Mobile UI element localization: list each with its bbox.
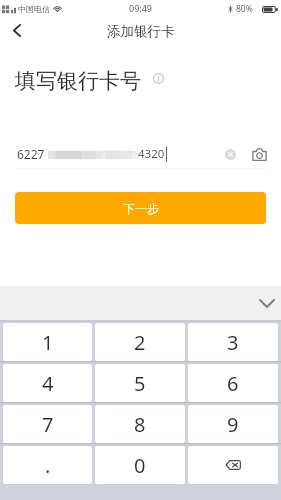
staticText: 6	[227, 370, 239, 397]
button[interactable]: 4	[3, 364, 92, 402]
button[interactable]: 下一步	[15, 192, 266, 224]
staticText: 5	[134, 370, 146, 397]
staticText: 80%	[236, 3, 253, 15]
button[interactable]: 9	[188, 405, 278, 443]
staticText: 09:49	[129, 2, 153, 14]
button[interactable]: 8	[95, 405, 185, 443]
button[interactable]: 7	[3, 405, 92, 443]
button[interactable]: 6	[188, 364, 278, 402]
staticText: 1	[42, 329, 54, 356]
button[interactable]: 清除	[219, 143, 241, 165]
staticText: 4320	[138, 146, 165, 162]
staticText: 6227	[17, 146, 45, 162]
button[interactable]: 0	[95, 446, 185, 484]
staticText: 4	[42, 370, 54, 397]
staticText: 7	[42, 411, 54, 438]
button[interactable]: 说明	[147, 67, 169, 89]
button[interactable]: 删除	[188, 446, 278, 484]
staticText: 填写银行卡号	[15, 68, 141, 92]
button[interactable]: 2	[95, 323, 185, 361]
button[interactable]: 1	[3, 323, 92, 361]
button[interactable]: 5	[95, 364, 185, 402]
button[interactable]: 拍照识别银行卡	[248, 143, 270, 165]
button[interactable]: 3	[188, 323, 278, 361]
staticText: 8	[134, 411, 146, 438]
staticText: 0	[134, 452, 146, 479]
button[interactable]: 收起键盘	[253, 289, 281, 317]
staticText: 下一步	[123, 201, 159, 216]
button[interactable]: .	[3, 446, 92, 484]
staticText: 9	[227, 411, 239, 438]
staticText: 2	[134, 329, 146, 356]
button[interactable]: 返回	[3, 16, 31, 44]
staticText: .	[45, 452, 51, 479]
staticText: 3	[227, 329, 239, 356]
staticText: 中国电信	[18, 4, 50, 14]
staticText: 添加银行卡	[107, 23, 175, 40]
